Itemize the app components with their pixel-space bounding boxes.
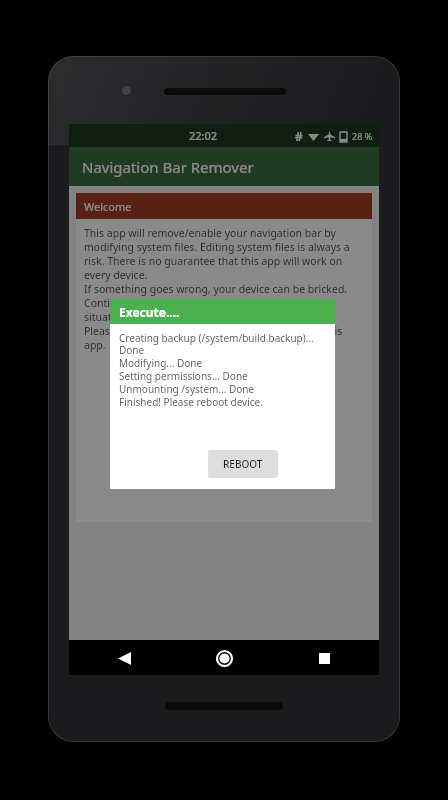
button[interactable]: Back xyxy=(109,643,139,673)
staticText: # xyxy=(295,128,303,144)
staticText: This app will remove/enable your navigat… xyxy=(84,226,364,352)
staticText: 28 % xyxy=(352,130,373,142)
staticText: Creating backup (/system/build.backup)..… xyxy=(119,331,314,409)
button[interactable]: REBOOT xyxy=(208,450,278,478)
button[interactable]: Recents xyxy=(309,643,339,673)
staticText: REBOOT xyxy=(223,457,263,471)
staticText: Execute.... xyxy=(119,304,180,320)
staticText: 22:02 xyxy=(189,128,218,143)
staticText: Welcome xyxy=(84,199,132,214)
staticText: Navigation Bar Remover xyxy=(82,157,254,177)
button[interactable]: Home xyxy=(209,643,239,673)
